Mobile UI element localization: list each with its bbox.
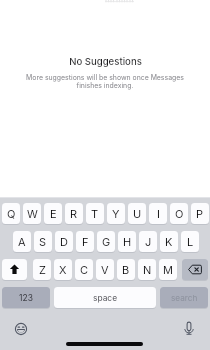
staticText: A [18, 235, 26, 248]
staticText: U [133, 207, 142, 220]
button[interactable]: search [160, 287, 208, 308]
staticText: I [157, 207, 160, 220]
staticText: E [50, 207, 57, 220]
button[interactable]: D [55, 231, 73, 252]
button[interactable]: A [13, 231, 31, 252]
button[interactable]: C [75, 259, 93, 280]
staticText: T [91, 207, 99, 220]
staticText: O [175, 207, 184, 220]
staticText: L [187, 235, 194, 248]
staticText: W [27, 207, 38, 220]
staticText: J [145, 235, 152, 248]
staticText: space [93, 293, 118, 303]
button[interactable]: V [96, 259, 114, 280]
button[interactable]: Q [2, 203, 20, 224]
staticText: S [39, 235, 47, 248]
button[interactable]: N [138, 259, 156, 280]
button[interactable]: 123 [2, 287, 50, 308]
button[interactable]: K [160, 231, 178, 252]
button[interactable]: F [76, 231, 94, 252]
button[interactable]: P [191, 203, 209, 224]
button[interactable]: Y [107, 203, 125, 224]
button[interactable]: L [181, 231, 199, 252]
button[interactable]: Dictation [179, 319, 199, 339]
button[interactable]: I [149, 203, 167, 224]
staticText: Q [7, 207, 16, 220]
button[interactable]: Emoji keyboard [11, 319, 31, 339]
staticText: H [123, 235, 132, 248]
staticText: More suggestions will be shown once Mess… [26, 73, 184, 90]
staticText: P [196, 207, 204, 220]
button[interactable]: B [117, 259, 135, 280]
staticText: G [102, 235, 111, 248]
button[interactable]: X [54, 259, 72, 280]
staticText: X [59, 263, 67, 276]
staticText: F [82, 235, 89, 248]
staticText: C [80, 263, 89, 276]
staticText: V [101, 263, 109, 276]
staticText: No Suggestions [69, 56, 142, 68]
button[interactable]: S [34, 231, 52, 252]
button[interactable]: Z [33, 259, 51, 280]
staticText: Y [112, 207, 120, 220]
button[interactable]: Backspace [182, 259, 208, 280]
button[interactable]: H [118, 231, 136, 252]
button[interactable]: space [54, 287, 156, 308]
staticText: N [143, 263, 152, 276]
button[interactable]: R [65, 203, 83, 224]
staticText: R [70, 207, 78, 220]
button[interactable]: W [23, 203, 41, 224]
button[interactable]: O [170, 203, 188, 224]
staticText: D [60, 235, 68, 248]
button[interactable]: G [97, 231, 115, 252]
button[interactable]: U [128, 203, 146, 224]
button[interactable]: J [139, 231, 157, 252]
button[interactable]: Shift [2, 259, 27, 280]
staticText: search [171, 293, 198, 303]
button[interactable]: E [44, 203, 62, 224]
staticText: K [165, 235, 173, 248]
staticText: Z [39, 263, 46, 276]
staticText: M [163, 263, 173, 276]
button[interactable]: T [86, 203, 104, 224]
button[interactable]: M [159, 259, 177, 280]
staticText: B [122, 263, 130, 276]
staticText: 123 [19, 293, 33, 303]
